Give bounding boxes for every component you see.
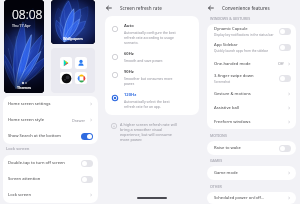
button[interactable]: Dynamic Capsule (279, 28, 291, 35)
staticText: Screen attention (8, 176, 41, 182)
button[interactable]: 90Hz (105, 66, 199, 89)
staticText: Gesture & motions (214, 91, 251, 97)
staticText: Thu 17 Apr (12, 23, 31, 28)
button[interactable]: Lock screen (3, 187, 98, 203)
button[interactable] (51, 48, 95, 93)
button[interactable]: Wallpapers (51, 0, 95, 44)
button[interactable]: Back (103, 2, 114, 13)
staticText: Dynamic Capsule (214, 26, 248, 32)
staticText: GAMES (210, 158, 223, 163)
button[interactable]: 60Hz (105, 48, 199, 66)
staticText: Screenshot (214, 80, 231, 84)
button[interactable]: Home screen style (3, 112, 98, 128)
staticText: Home screen style (8, 117, 45, 123)
button[interactable]: Screen attention (81, 176, 93, 183)
button[interactable]: Freeform windows (207, 115, 296, 129)
staticText: A higher screen refresh rate will bring … (120, 122, 179, 142)
button[interactable]: Raise to wake (207, 141, 296, 155)
button[interactable]: Double-tap to turn off screen (3, 155, 98, 171)
staticText: One-handed mode (214, 61, 251, 67)
button[interactable]: Back (205, 2, 216, 13)
button[interactable]: Raise to wake (279, 145, 291, 152)
staticText: Themes (17, 85, 32, 90)
staticText: Lock screen (6, 146, 30, 152)
staticText: Auto (124, 23, 134, 29)
staticText: Drawer (72, 118, 86, 123)
button[interactable]: Game mode (207, 166, 296, 180)
button[interactable]: App Sidebar (207, 39, 296, 56)
button[interactable]: Show Search at the bottom (81, 133, 93, 140)
staticText: OTHER (210, 184, 222, 189)
staticText: Display key notifications in the status … (214, 33, 274, 37)
staticText: WINDOWS & GESTURES (210, 16, 251, 21)
staticText: Wallpapers (63, 36, 83, 41)
button[interactable]: One-handed mode (207, 56, 296, 71)
button[interactable]: 120Hz (105, 89, 199, 112)
button[interactable]: Gesture & motions (207, 86, 296, 101)
staticText: Smooth and save power. (124, 58, 163, 63)
button[interactable]: Show Search at the bottom (3, 128, 98, 144)
staticText: Game mode (214, 170, 238, 176)
staticText: Home screen settings (8, 101, 51, 107)
staticText: 120Hz (124, 92, 137, 98)
staticText: Smoother but consumes more power. (124, 76, 177, 86)
staticText: Lock screen (8, 192, 31, 198)
button[interactable]: 3-finger swipe down (207, 71, 296, 86)
button[interactable]: Double-tap to turn off screen (81, 160, 93, 167)
staticText: Double-tap to turn off screen (8, 160, 65, 166)
button[interactable]: 08:08 (4, 0, 44, 93)
staticText: App Sidebar (214, 42, 238, 48)
button[interactable]: App Sidebar (279, 44, 291, 51)
button[interactable]: Home screen settings (3, 96, 98, 112)
staticText: Scheduled power on/off... (214, 195, 265, 201)
staticText: Raise to wake (214, 145, 241, 151)
staticText: Automatically configure the best refresh… (124, 30, 177, 45)
button[interactable]: Screen attention (3, 171, 98, 187)
staticText: Off (278, 61, 284, 66)
staticText: Screen refresh rate (120, 5, 162, 11)
staticText: 08:08 (12, 6, 43, 22)
button[interactable]: 3-finger swipe down (279, 75, 291, 82)
button[interactable]: Assistive ball (207, 101, 296, 115)
staticText: Automatically select the best refresh ra… (124, 99, 177, 109)
staticText: 3-finger swipe down (214, 73, 254, 79)
staticText: Quickly launch apps from the sidebar (214, 49, 269, 53)
staticText: 90Hz (124, 69, 134, 75)
staticText: Show Search at the bottom (8, 133, 61, 139)
button[interactable]: Auto (105, 20, 199, 48)
staticText: MOTIONS (210, 133, 227, 138)
button[interactable]: Dynamic Capsule (207, 24, 296, 39)
staticText: 60Hz (124, 51, 134, 57)
staticText: Assistive ball (214, 105, 240, 111)
staticText: Freeform windows (214, 119, 251, 125)
staticText: Convenience features (222, 5, 270, 11)
button[interactable]: Scheduled power on/off... (207, 192, 296, 204)
